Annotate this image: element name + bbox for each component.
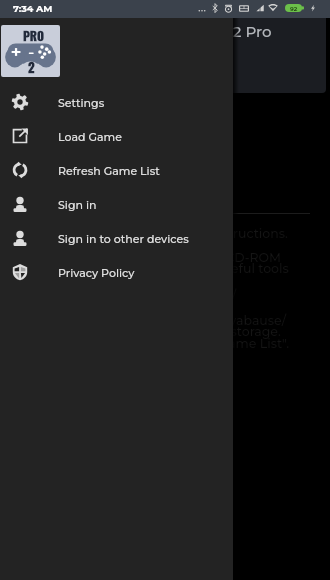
button[interactable]: Sign in to other devices — [0, 221, 233, 255]
staticText: 2. Copy the game images to images/yabaus… — [0, 313, 287, 328]
staticText: Sign in — [58, 198, 97, 211]
staticText: 1. Prepare the game image of the CD-ROM — [12, 250, 282, 265]
staticText: Sign in to other devices — [58, 232, 189, 245]
staticText: 92 — [290, 5, 298, 12]
button[interactable]: Settings — [0, 85, 233, 119]
button[interactable]: Privacy Policy — [0, 255, 233, 289]
staticText: 3. Tap the menu "Refresh Game List". — [56, 336, 290, 351]
staticText: Settings — [58, 96, 105, 109]
staticText: directory on the external storage. — [71, 324, 281, 339]
staticText: PRO — [23, 27, 44, 45]
staticText: image by yourself. Useful tools — [96, 261, 289, 276]
staticText: 2 — [28, 57, 35, 76]
button[interactable]: Refresh Game List — [0, 153, 233, 187]
button[interactable]: Load Game — [0, 119, 233, 153]
staticText: 7:34 AM — [13, 3, 53, 15]
button[interactable]: Sign in — [0, 187, 233, 221]
staticText: Yaba Sanshiro 2 Pro — [122, 22, 272, 40]
staticText: Load Game — [58, 130, 122, 143]
staticText: Please read the following instructions. — [46, 226, 288, 241]
staticText: Refresh Game List — [58, 164, 160, 177]
staticText: Privacy Policy — [58, 266, 135, 279]
staticText: http://wiki.yabause.org/ — [88, 288, 237, 303]
